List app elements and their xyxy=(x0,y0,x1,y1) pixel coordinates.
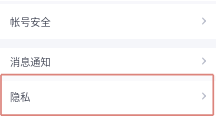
button[interactable]: 隐私 xyxy=(0,81,216,112)
button[interactable]: 消息通知 xyxy=(0,48,216,74)
other: 帐号安全 xyxy=(198,15,210,27)
button[interactable]: 帐号安全 xyxy=(0,4,216,39)
other: 消息通知 xyxy=(198,55,210,67)
staticText: 消息通知 xyxy=(10,54,51,69)
staticText: 帐号安全 xyxy=(10,14,51,29)
staticText: 隐私 xyxy=(10,89,31,104)
other: 隐私 xyxy=(198,90,210,102)
